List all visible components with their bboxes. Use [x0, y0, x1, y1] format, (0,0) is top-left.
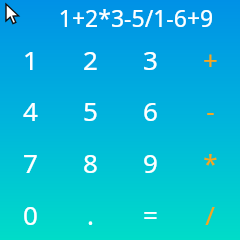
staticText: = [143, 197, 158, 232]
staticText: + [203, 42, 218, 77]
staticText: 8 [83, 145, 98, 180]
button[interactable]: 3 [120, 34, 180, 85]
button[interactable]: Divide [180, 188, 240, 240]
button[interactable]: 1 [0, 34, 60, 85]
button[interactable]: * [180, 136, 240, 188]
button[interactable]: 6 [120, 85, 180, 136]
staticText: 4 [23, 93, 38, 128]
staticText: 1 [23, 42, 38, 77]
staticText: 5 [83, 93, 98, 128]
staticText: 1+2*3-5/1-6+9 [40, 2, 232, 33]
staticText: 6 [143, 93, 158, 128]
button[interactable]: Decimal point [60, 188, 120, 240]
button[interactable]: 1+2*3-5/1-6+9 [0, 0, 240, 34]
button[interactable]: 9 [120, 136, 180, 188]
staticText: . [87, 197, 94, 232]
staticText: * [203, 145, 218, 180]
button[interactable]: - [180, 85, 240, 136]
button[interactable]: 2 [60, 34, 120, 85]
staticText: 0 [23, 197, 38, 232]
staticText: / [205, 197, 215, 232]
button[interactable]: 5 [60, 85, 120, 136]
staticText: 3 [143, 42, 158, 77]
staticText: - [206, 93, 215, 128]
staticText: 7 [23, 145, 38, 180]
button[interactable]: 7 [0, 136, 60, 188]
button[interactable]: + [180, 34, 240, 85]
button[interactable]: Zero [0, 188, 60, 240]
button[interactable]: 4 [0, 85, 60, 136]
button[interactable]: 8 [60, 136, 120, 188]
button[interactable]: Equals [120, 188, 180, 240]
staticText: 9 [143, 145, 158, 180]
staticText: 2 [83, 42, 98, 77]
